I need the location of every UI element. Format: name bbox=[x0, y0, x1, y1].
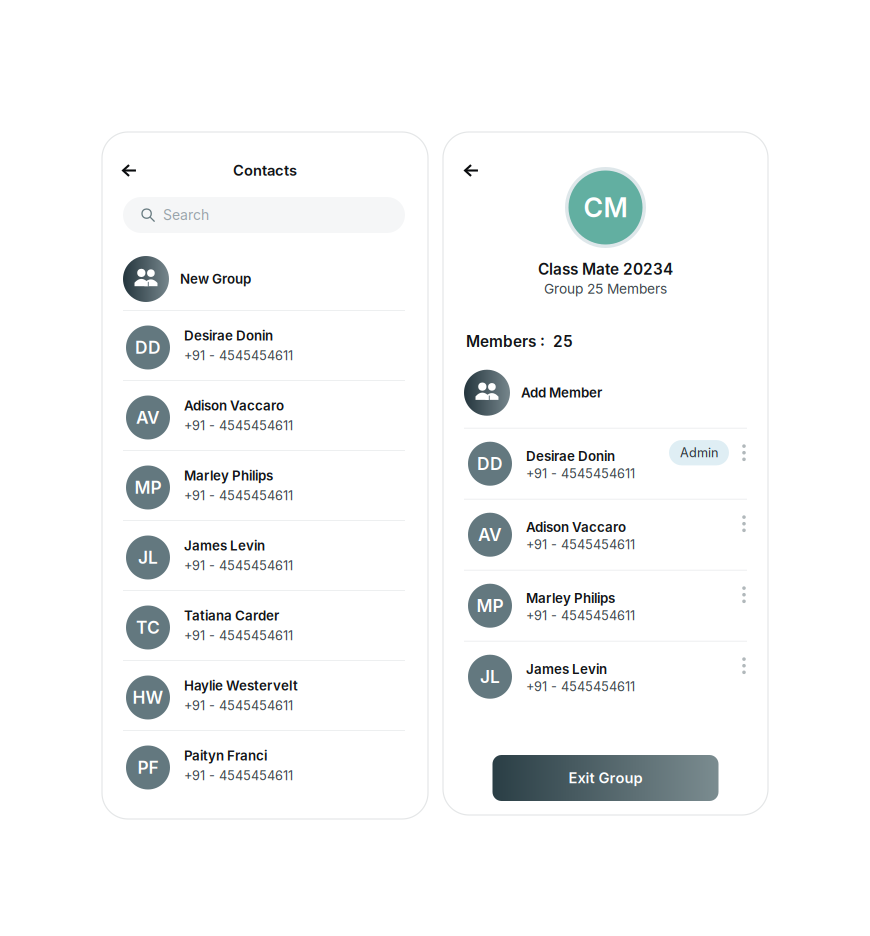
staticText: Exit Group bbox=[568, 769, 642, 787]
staticText: DD bbox=[135, 337, 161, 358]
staticText: Adison Vaccaro bbox=[526, 519, 626, 535]
staticText: JL bbox=[138, 547, 158, 568]
staticText: +91 - 4545454611 bbox=[184, 418, 293, 433]
button[interactable]: PF bbox=[123, 731, 405, 800]
staticText: DD bbox=[477, 453, 503, 474]
staticText: +91 - 4545454611 bbox=[526, 608, 635, 623]
staticText: James Levin bbox=[184, 538, 265, 554]
button[interactable]: JL bbox=[123, 521, 405, 590]
button[interactable]: New Group bbox=[123, 248, 405, 310]
button[interactable]: MP bbox=[464, 571, 747, 641]
staticText: Desirae Donin bbox=[184, 328, 273, 344]
button[interactable]: AV bbox=[123, 381, 405, 450]
staticText: +91 - 4545454611 bbox=[526, 466, 635, 481]
staticText: CM bbox=[583, 191, 627, 224]
button[interactable]: Back bbox=[118, 159, 141, 182]
staticText: +91 - 4545454611 bbox=[184, 558, 293, 573]
staticText: Marley Philips bbox=[184, 468, 273, 484]
staticText: HW bbox=[132, 687, 163, 708]
staticText: Marley Philips bbox=[526, 590, 615, 606]
staticText: +91 - 4545454611 bbox=[184, 628, 293, 643]
staticText: Group 25 Members bbox=[544, 281, 667, 297]
staticText: Paityn Franci bbox=[184, 748, 267, 764]
button[interactable]: Search bbox=[123, 197, 405, 233]
button[interactable]: JL bbox=[464, 642, 747, 712]
staticText: +91 - 4545454611 bbox=[184, 768, 293, 783]
staticText: JL bbox=[480, 666, 500, 687]
staticText: TC bbox=[136, 617, 160, 638]
staticText: +91 - 4545454611 bbox=[184, 488, 293, 503]
staticText: AV bbox=[478, 524, 502, 545]
button[interactable]: TC bbox=[123, 591, 405, 660]
button[interactable]: AV bbox=[464, 500, 747, 570]
button[interactable]: DD bbox=[464, 429, 747, 499]
staticText: PF bbox=[137, 757, 158, 778]
staticText: Haylie Westervelt bbox=[184, 678, 298, 694]
staticText: Class Mate 20234 bbox=[538, 260, 673, 279]
staticText: AV bbox=[136, 407, 160, 428]
staticText: Search bbox=[163, 206, 209, 223]
staticText: +91 - 4545454611 bbox=[184, 698, 293, 713]
staticText: Members : 25 bbox=[466, 332, 573, 351]
button[interactable]: Exit Group bbox=[492, 755, 718, 801]
staticText: MP bbox=[134, 477, 161, 498]
button[interactable]: MP bbox=[123, 451, 405, 520]
button[interactable]: Add Member bbox=[464, 362, 747, 428]
staticText: +91 - 4545454611 bbox=[526, 537, 635, 552]
staticText: Desirae Donin bbox=[526, 448, 615, 464]
staticText: +91 - 4545454611 bbox=[526, 679, 635, 694]
staticText: Contacts bbox=[233, 162, 297, 179]
staticText: Add Member bbox=[521, 385, 602, 401]
staticText: Adison Vaccaro bbox=[184, 398, 284, 414]
button[interactable]: Back bbox=[460, 159, 483, 182]
button[interactable]: HW bbox=[123, 661, 405, 730]
staticText: New Group bbox=[180, 271, 251, 287]
staticText: +91 - 4545454611 bbox=[184, 348, 293, 363]
button[interactable]: DD bbox=[123, 311, 405, 380]
staticText: Tatiana Carder bbox=[184, 608, 279, 624]
staticText: James Levin bbox=[526, 661, 607, 677]
staticText: Admin bbox=[680, 445, 718, 460]
staticText: MP bbox=[476, 595, 503, 616]
